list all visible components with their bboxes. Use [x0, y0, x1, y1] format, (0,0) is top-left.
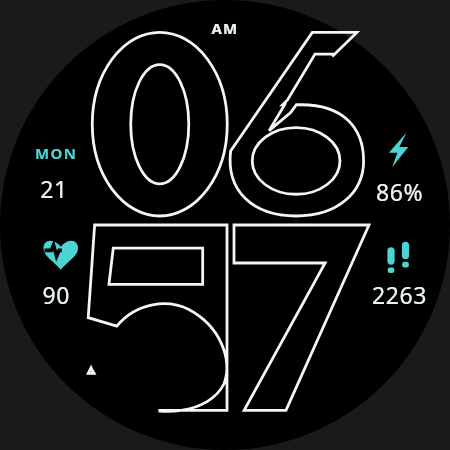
- button[interactable]: Battery complication, 86 percent: [342, 126, 450, 216]
- button[interactable]: Date complication, Monday 21: [9, 126, 117, 207]
- button[interactable]: Time, 6 57 AM: [81, 23, 369, 410]
- button[interactable]: Steps complication, 2263 steps: [333, 225, 450, 315]
- button[interactable]: Heart rate complication, 90 beats per mi…: [9, 225, 117, 315]
